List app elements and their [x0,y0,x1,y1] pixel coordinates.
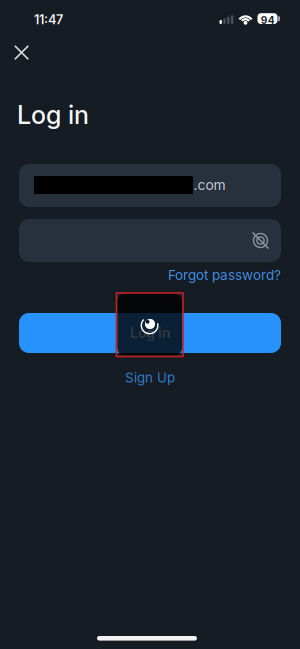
staticText: 11:47 [34,12,63,27]
button[interactable]: Sign Up [125,369,175,386]
button[interactable]: Show password [245,225,275,255]
staticText: Log in [17,99,89,130]
button[interactable]: Log in [19,313,281,353]
button[interactable]: Close [7,38,35,66]
staticText: Forgot password? [168,267,281,283]
staticText: 94 [261,14,275,26]
staticText: Sign Up [125,369,175,386]
staticText: Log in [130,325,170,341]
staticText: .com [193,176,225,193]
button[interactable]: Forgot password? [168,267,281,283]
